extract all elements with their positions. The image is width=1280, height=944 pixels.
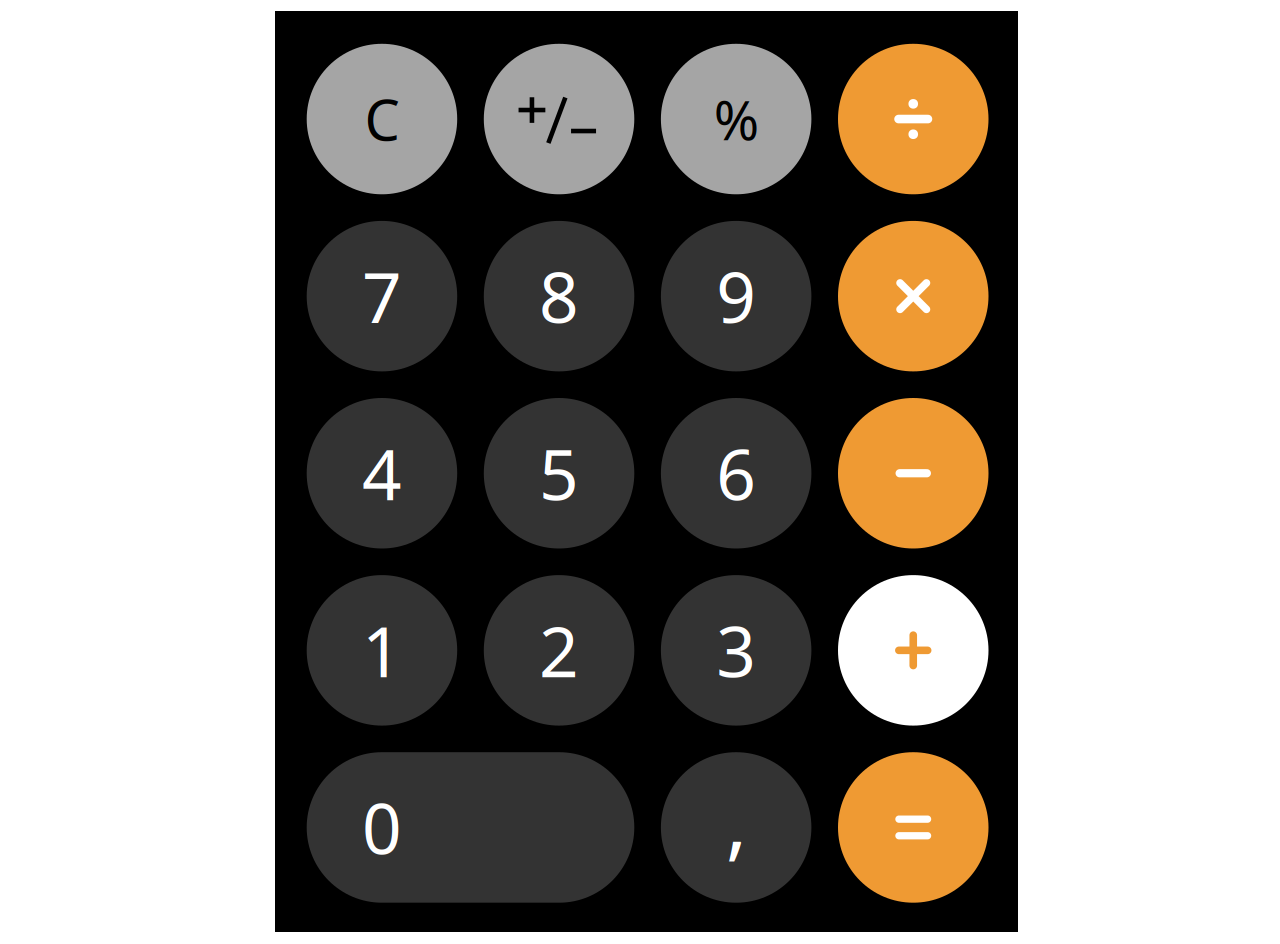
staticText: 9 [716,250,756,342]
staticText: 3 [716,604,756,696]
button[interactable]: 0 [307,752,634,903]
button[interactable]: 3 [661,575,811,726]
button[interactable]: 5 [484,398,634,548]
button[interactable]: Multiply [838,221,988,371]
button[interactable]: Toggle sign [484,44,634,194]
button[interactable]: Divide [838,44,988,194]
staticText: 7 [362,250,402,342]
button[interactable]: 6 [661,398,811,548]
button[interactable]: 1 [307,575,457,726]
staticText: 1 [362,604,402,696]
button[interactable]: 9 [661,221,811,371]
button[interactable]: Subtract [838,398,988,548]
button[interactable]: 8 [484,221,634,371]
staticText: 0 [362,781,402,873]
staticText: 6 [716,427,756,519]
staticText: % [714,83,759,155]
staticText: 4 [362,427,402,519]
button[interactable]: 7 [307,221,457,371]
staticText: , [726,767,747,873]
button[interactable]: Clear [307,44,457,194]
staticText: 2 [539,604,579,696]
button[interactable]: 2 [484,575,634,726]
staticText: C [364,82,399,156]
staticText: 8 [539,250,579,342]
button[interactable]: Add [838,575,988,726]
button[interactable]: Equals [838,752,988,903]
button[interactable]: 4 [307,398,457,548]
button[interactable]: Percent [661,44,811,194]
button[interactable]: Decimal separator [661,752,811,903]
staticText: 5 [539,427,579,519]
